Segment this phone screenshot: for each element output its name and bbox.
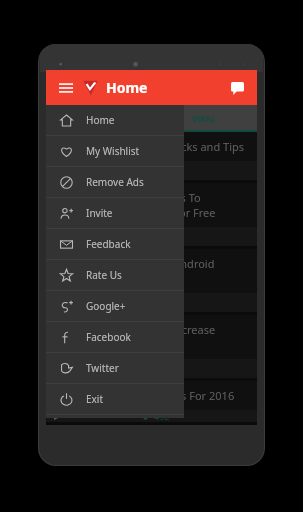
button[interactable]: Open navigation drawer [56,78,76,98]
staticText: My Wishlist [86,144,140,158]
staticText: TRENDING [77,113,120,124]
button[interactable]: Google+ [46,291,184,321]
button[interactable]: TRENDING [46,105,151,132]
button[interactable]: Top 5 Best Apps & Games To Download Paid… [46,183,257,246]
staticText: Top 10 Best Android Apps For 2016 [54,388,235,403]
staticText: Feedback [86,237,131,251]
staticText: Rate Us [86,268,122,282]
staticText: 492 [154,410,170,422]
button[interactable]: Feedback [46,229,184,259]
button[interactable]: How To Hack & Bypass Android Pattern Loc… [46,249,257,312]
staticText: Best Android Hacking Tricks and Tips [54,139,245,154]
button[interactable]: Rate Us [46,260,184,290]
button[interactable]: Invite [46,198,184,228]
staticText: Twitter [86,361,119,375]
button[interactable]: Best Android Hacking Tricks and Tips [46,132,257,180]
staticText: Remove Ads [86,175,144,189]
staticText: VIRAL [192,113,216,124]
staticText: Invite [86,206,113,220]
staticText: Facebook [86,330,131,344]
button[interactable]: My Wishlist [46,136,184,166]
button[interactable]: Twitter [46,353,184,383]
button[interactable]: Facebook [46,322,184,352]
button[interactable]: Best 7 Simple Ways To Increase Battery L… [46,315,257,378]
button[interactable]: Chat [227,78,247,98]
button[interactable]: Top 10 Best Android Apps For 2016 [46,381,257,422]
button[interactable]: Home [46,105,184,135]
staticText: Top 5 Best Apps & Games To Download Paid… [54,190,249,220]
staticText: Exit [86,392,104,406]
staticText: Google+ [86,299,126,313]
button[interactable]: Remove Ads [46,167,184,197]
button[interactable]: VIRAL [151,105,257,132]
staticText: Best 7 Simple Ways To Increase Battery L… [54,322,249,352]
staticText: Home [86,113,115,127]
staticText: 858 [154,165,170,177]
staticText: Home [106,78,148,97]
button[interactable]: Exit [46,384,184,414]
staticText: How To Hack & Bypass Android Pattern Loc… [54,256,249,286]
